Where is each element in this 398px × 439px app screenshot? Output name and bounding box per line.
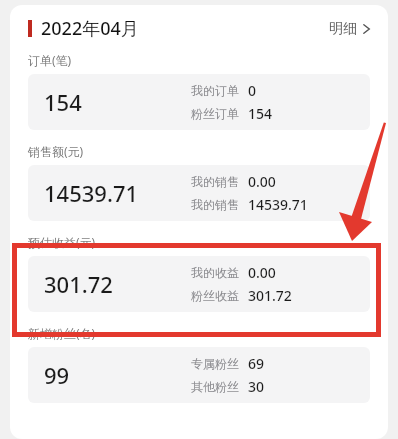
staticText: 14539.71 [44,178,139,208]
staticText: 我的销售 [191,174,239,189]
button[interactable]: 154 [28,74,370,130]
staticText: 301.72 [248,286,292,305]
staticText: 专属粉丝 [191,356,239,371]
staticText: 订单(笔) [28,52,72,68]
staticText: 0.00 [248,172,276,191]
staticText: 新增粉丝(名) [28,325,96,341]
staticText: 30 [248,377,265,396]
staticText: 我的销售 [191,197,239,212]
staticText: 154 [44,87,82,117]
staticText: 0 [248,81,257,100]
staticText: 69 [248,354,265,373]
staticText: 预估收益(元) [28,234,96,250]
staticText: 其他粉丝 [191,379,239,394]
staticText: 粉丝订单 [191,106,239,121]
staticText: 我的订单 [191,83,239,98]
staticText: 明细 [329,20,357,38]
button[interactable]: 14539.71 [28,165,370,221]
staticText: 301.72 [44,269,113,299]
button[interactable]: 明细 [327,14,372,44]
staticText: 14539.71 [248,195,308,214]
staticText: 我的收益 [191,265,239,280]
staticText: 0.00 [248,263,276,282]
staticText: 销售额(元) [28,143,84,159]
staticText: 99 [44,360,70,390]
button[interactable]: 301.72 [28,256,370,312]
staticText: 2022年04月 [41,16,139,41]
staticText: 154 [248,104,273,123]
staticText: 粉丝收益 [191,288,239,303]
button[interactable]: 99 [28,347,370,403]
